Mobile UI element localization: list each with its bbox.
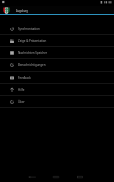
staticText: Benachrichtigungen (18, 63, 46, 67)
staticText: Feedback (18, 76, 31, 80)
staticText: Augsburg (16, 9, 28, 13)
button[interactable]: Back (28, 165, 36, 182)
staticText: Hilfe (18, 88, 25, 92)
staticText: Nachrichten Speicher (18, 51, 48, 55)
button[interactable]: Home (52, 165, 60, 182)
staticText: Über (18, 100, 25, 104)
button[interactable]: Recent apps (76, 165, 84, 182)
button[interactable]: Nachrichten Speicher (0, 47, 114, 58)
staticText: Zeige & Präsentation (18, 39, 47, 43)
button[interactable]: Benachrichtigungen (0, 59, 114, 71)
staticText: Synchronisation (18, 27, 40, 31)
button[interactable]: Über (0, 96, 114, 107)
button[interactable]: Hilfe (0, 84, 114, 95)
button[interactable]: Zeige & Präsentation (0, 35, 114, 46)
button[interactable]: Feedback (0, 72, 114, 83)
button[interactable]: Synchronisation (0, 23, 114, 34)
